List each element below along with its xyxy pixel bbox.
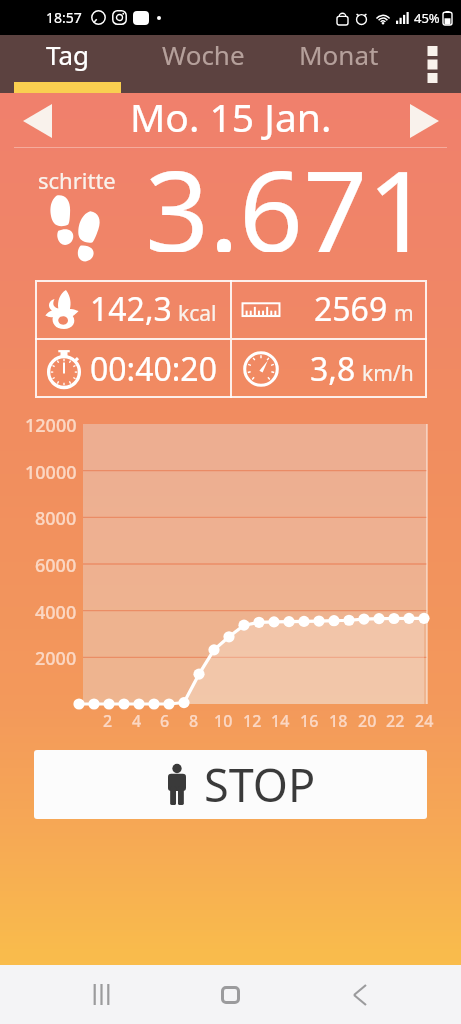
button[interactable]: 2569	[232, 280, 427, 338]
staticText: 12	[243, 710, 262, 732]
button[interactable]: STOP	[34, 750, 427, 819]
button[interactable]: Woche	[135, 35, 271, 93]
button[interactable]: Back	[295, 965, 424, 1024]
staticText: 4000	[35, 600, 77, 625]
staticText: 20	[358, 710, 377, 732]
staticText: 2	[103, 710, 113, 732]
staticText: 14	[271, 710, 290, 732]
staticText: 10	[214, 710, 233, 732]
staticText: 8	[189, 710, 199, 732]
button[interactable]: 142,3	[35, 280, 230, 338]
staticText: 18	[329, 710, 348, 732]
staticText: 24	[415, 710, 434, 732]
button[interactable]: Home	[166, 965, 295, 1024]
staticText: 3,8	[310, 347, 356, 391]
button[interactable]: Previous day	[13, 97, 61, 145]
staticText: 10000	[25, 460, 77, 485]
staticText: 142,3	[90, 287, 172, 331]
staticText: Woche	[162, 37, 245, 72]
button[interactable]: 00:40:20	[35, 340, 230, 398]
button[interactable]: Tag	[0, 35, 135, 93]
staticText: 45%	[414, 9, 440, 27]
staticText: Tag	[46, 37, 89, 72]
staticText: 6000	[35, 553, 77, 578]
staticText: 2000	[35, 646, 77, 671]
button[interactable]: Monat	[271, 35, 406, 93]
staticText: 3.671	[145, 132, 432, 252]
staticText: 2569	[314, 287, 388, 331]
staticText: kcal	[178, 299, 217, 328]
staticText: 22	[386, 710, 405, 732]
button[interactable]: Recent apps	[37, 965, 166, 1024]
staticText: STOP	[204, 754, 316, 815]
staticText: m	[394, 299, 414, 328]
staticText: 16	[300, 710, 319, 732]
button[interactable]: More options	[406, 35, 461, 93]
button[interactable]: 3,8	[232, 340, 427, 398]
staticText: 8000	[35, 506, 77, 531]
staticText: 00:40:20	[90, 347, 217, 391]
staticText: Monat	[299, 37, 379, 72]
staticText: 4	[132, 710, 142, 732]
staticText: km/h	[362, 359, 414, 388]
staticText: 6	[160, 710, 170, 732]
staticText: Mo. 15 Jan.	[130, 90, 332, 143]
staticText: 12000	[25, 413, 77, 438]
staticText: schritte	[38, 165, 116, 195]
staticText: 18:57	[46, 8, 82, 27]
button[interactable]: Next day	[400, 97, 448, 145]
